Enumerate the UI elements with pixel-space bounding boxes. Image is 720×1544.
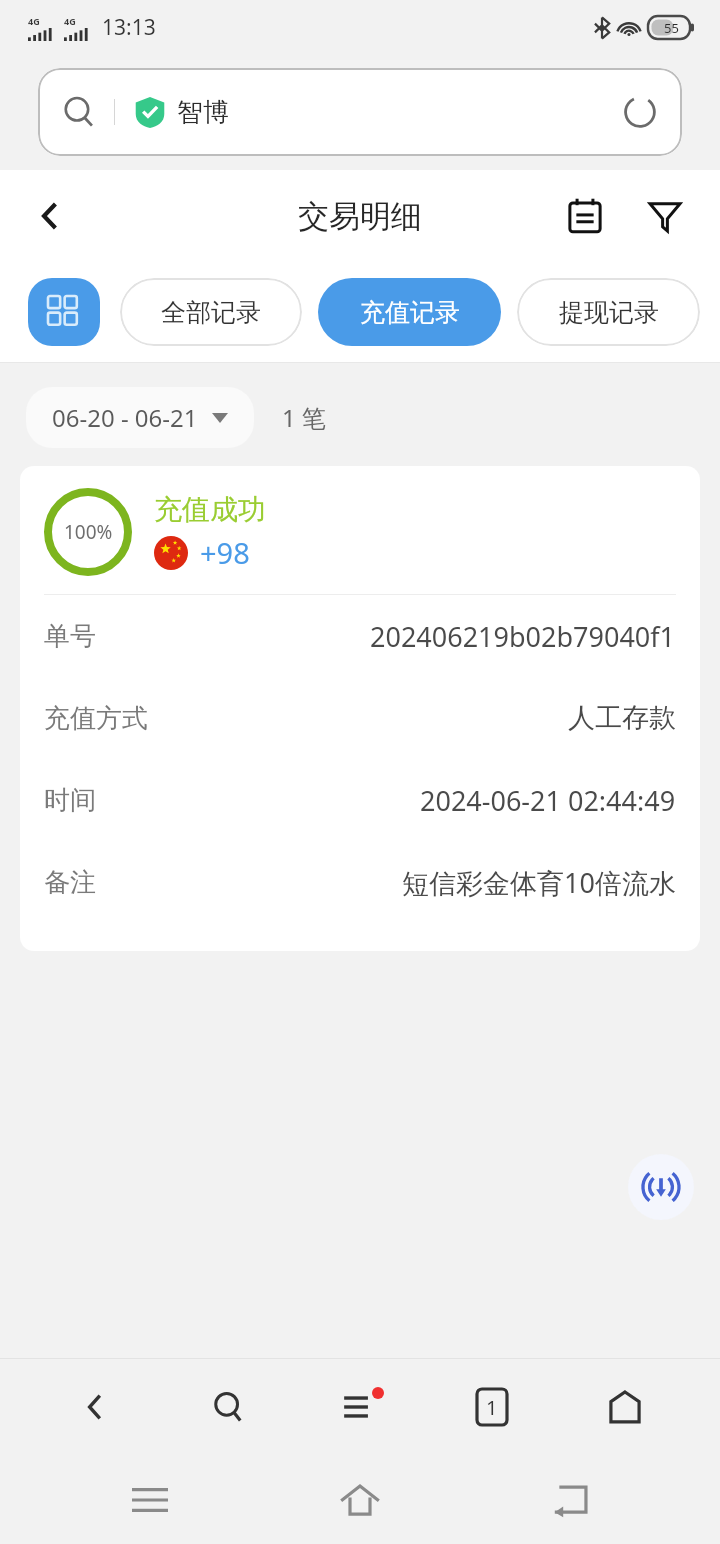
button[interactable]: Back — [510, 1456, 630, 1544]
button[interactable]: Home — [570, 1359, 680, 1455]
button[interactable]: Back — [40, 1359, 150, 1455]
staticText: 1 笔 — [282, 401, 326, 434]
staticText: 交易明细 — [298, 197, 422, 236]
staticText: 4G — [64, 15, 76, 27]
staticText: 提现记录 — [559, 297, 659, 328]
button[interactable]: Calendar — [556, 187, 614, 245]
staticText: 备注 — [44, 866, 96, 899]
staticText: 06-20 - 06-21 — [52, 401, 198, 434]
button[interactable]: 智博 — [38, 68, 682, 156]
button[interactable]: 100% — [20, 466, 700, 951]
staticText: 4G — [28, 15, 40, 27]
staticText: 智博 — [177, 96, 229, 129]
button[interactable]: Download — [628, 1154, 694, 1220]
staticText: 202406219b02b79040f1 — [370, 618, 676, 655]
button[interactable]: Home — [300, 1456, 420, 1544]
staticText: 时间 — [44, 784, 96, 817]
button[interactable]: Menu — [305, 1359, 415, 1455]
staticText: 人工存款 — [568, 701, 676, 735]
staticText: 13:13 — [102, 13, 156, 42]
button[interactable]: 全部记录 — [120, 278, 302, 346]
button[interactable]: 充值记录 — [318, 278, 501, 346]
staticText: 单号 — [44, 620, 96, 653]
staticText: +98 — [200, 533, 250, 572]
staticText: 2024-06-21 02:44:49 — [420, 782, 676, 819]
staticText: 1 — [486, 1394, 498, 1421]
button[interactable]: 提现记录 — [517, 278, 700, 346]
button[interactable]: Search — [173, 1359, 283, 1455]
staticText: 100% — [64, 519, 113, 545]
staticText: 充值方式 — [44, 702, 148, 735]
button[interactable]: Grid view — [28, 278, 100, 346]
staticText: 短信彩金体育10倍流水 — [402, 864, 676, 901]
staticText: 充值成功 — [154, 492, 266, 527]
button[interactable]: 06-20 - 06-21 — [26, 387, 254, 448]
staticText: 全部记录 — [161, 297, 261, 328]
staticText: 55 — [664, 19, 679, 37]
staticText: 充值记录 — [360, 297, 460, 328]
button[interactable]: Filter — [636, 187, 694, 245]
button[interactable]: Tabs — [437, 1359, 547, 1455]
button[interactable]: Back — [20, 186, 80, 246]
button[interactable]: Recents — [90, 1456, 210, 1544]
